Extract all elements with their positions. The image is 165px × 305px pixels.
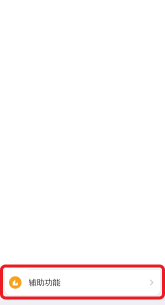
button[interactable]: 辅助功能 [5,270,160,295]
staticText: 辅助功能 [28,278,60,287]
button[interactable]: 智慧助手 [5,245,160,270]
